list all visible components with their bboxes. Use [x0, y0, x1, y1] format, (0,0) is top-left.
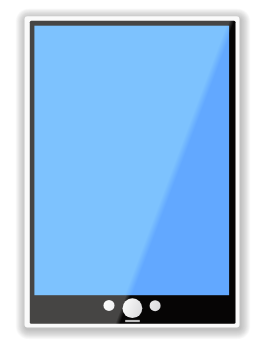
- button[interactable]: Back: [104, 300, 115, 311]
- button[interactable]: Home: [122, 298, 142, 318]
- button[interactable]: Menu: [150, 300, 161, 311]
